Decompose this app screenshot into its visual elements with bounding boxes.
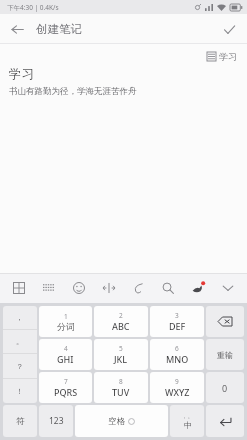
- button[interactable]: Voice: [127, 277, 149, 299]
- staticText: 3: [175, 311, 179, 320]
- button[interactable]: Backspace: [206, 306, 244, 337]
- button[interactable]: Search: [157, 277, 179, 299]
- staticText: 5: [119, 344, 123, 353]
- button[interactable]: 空格: [75, 405, 168, 437]
- staticText: 学习: [219, 51, 237, 62]
- staticText: TUV: [112, 386, 130, 398]
- staticText: 创建笔记: [36, 22, 82, 36]
- staticText: 学习: [9, 66, 34, 82]
- staticText: 0: [222, 382, 228, 394]
- button[interactable]: 9: [150, 372, 204, 403]
- button[interactable]: Text size: [98, 277, 120, 299]
- button[interactable]: ？: [3, 354, 37, 378]
- staticText: 符: [16, 416, 25, 427]
- button[interactable]: 5: [94, 339, 148, 370]
- staticText: 7: [64, 377, 68, 386]
- button[interactable]: 1: [39, 306, 92, 337]
- staticText: 空格: [108, 416, 125, 427]
- staticText: GHI: [57, 353, 74, 365]
- button[interactable]: Full keyboard: [38, 277, 60, 299]
- button[interactable]: ，。: [170, 405, 204, 437]
- staticText: 分词: [57, 321, 75, 332]
- button[interactable]: 重输: [206, 339, 244, 370]
- staticText: DEF: [169, 320, 186, 332]
- staticText: 。: [16, 337, 24, 346]
- staticText: ，。: [182, 413, 193, 420]
- button[interactable]: 6: [150, 339, 204, 370]
- staticText: 1: [64, 312, 68, 321]
- button[interactable]: 4: [39, 339, 92, 370]
- staticText: 重输: [217, 350, 233, 360]
- button[interactable]: Hide keyboard: [217, 277, 239, 299]
- staticText: 6: [175, 344, 179, 353]
- staticText: JKL: [114, 353, 128, 365]
- button[interactable]: 123: [39, 405, 73, 437]
- staticText: WXYZ: [165, 386, 190, 398]
- staticText: 2: [119, 311, 123, 320]
- button[interactable]: Keyboard layout: [8, 277, 30, 299]
- button[interactable]: 3: [150, 306, 204, 337]
- staticText: ，: [16, 313, 24, 322]
- button[interactable]: 8: [94, 372, 148, 403]
- button[interactable]: 2: [94, 306, 148, 337]
- staticText: ！: [16, 387, 24, 396]
- button[interactable]: 学习: [205, 49, 239, 64]
- button[interactable]: Back: [5, 17, 29, 41]
- staticText: 9: [175, 377, 179, 386]
- staticText: 书山有路勤为径，学海无涯苦作舟: [9, 86, 137, 97]
- button[interactable]: ，: [3, 306, 37, 329]
- button[interactable]: Emoji: [68, 277, 90, 299]
- staticText: 4: [64, 344, 68, 353]
- button[interactable]: ！: [3, 379, 37, 403]
- button[interactable]: 7: [39, 372, 92, 403]
- staticText: ABC: [112, 320, 130, 332]
- button[interactable]: Save: [217, 17, 241, 41]
- staticText: PQRS: [54, 386, 78, 398]
- staticText: MNO: [166, 353, 189, 365]
- button[interactable]: 0: [206, 372, 244, 403]
- staticText: 中: [184, 420, 192, 430]
- button[interactable]: 符: [3, 405, 37, 437]
- button[interactable]: Handwriting: [187, 277, 209, 299]
- staticText: 下午4:30 | 0.4K/s: [7, 3, 59, 12]
- staticText: 123: [49, 415, 64, 427]
- button[interactable]: Enter: [206, 405, 244, 437]
- staticText: ？: [16, 362, 24, 371]
- staticText: 8: [119, 377, 123, 386]
